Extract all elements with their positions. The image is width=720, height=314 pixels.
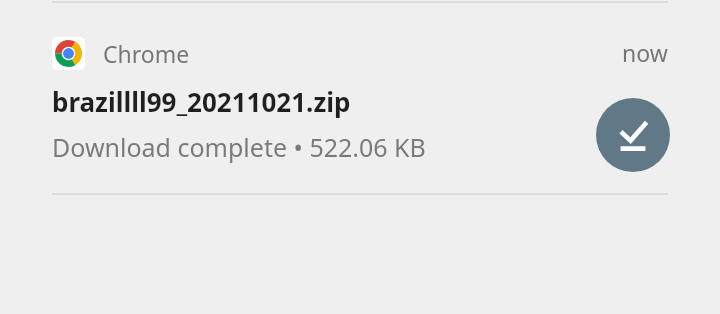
staticText: brazillll99_20211021.zip bbox=[52, 84, 351, 119]
button[interactable]: Chrome bbox=[0, 2, 720, 194]
staticText: Download complete • 522.06 KB bbox=[52, 130, 426, 164]
staticText: now bbox=[622, 37, 668, 68]
staticText: Chrome bbox=[103, 38, 190, 69]
button[interactable]: Open downloaded file bbox=[596, 98, 670, 172]
